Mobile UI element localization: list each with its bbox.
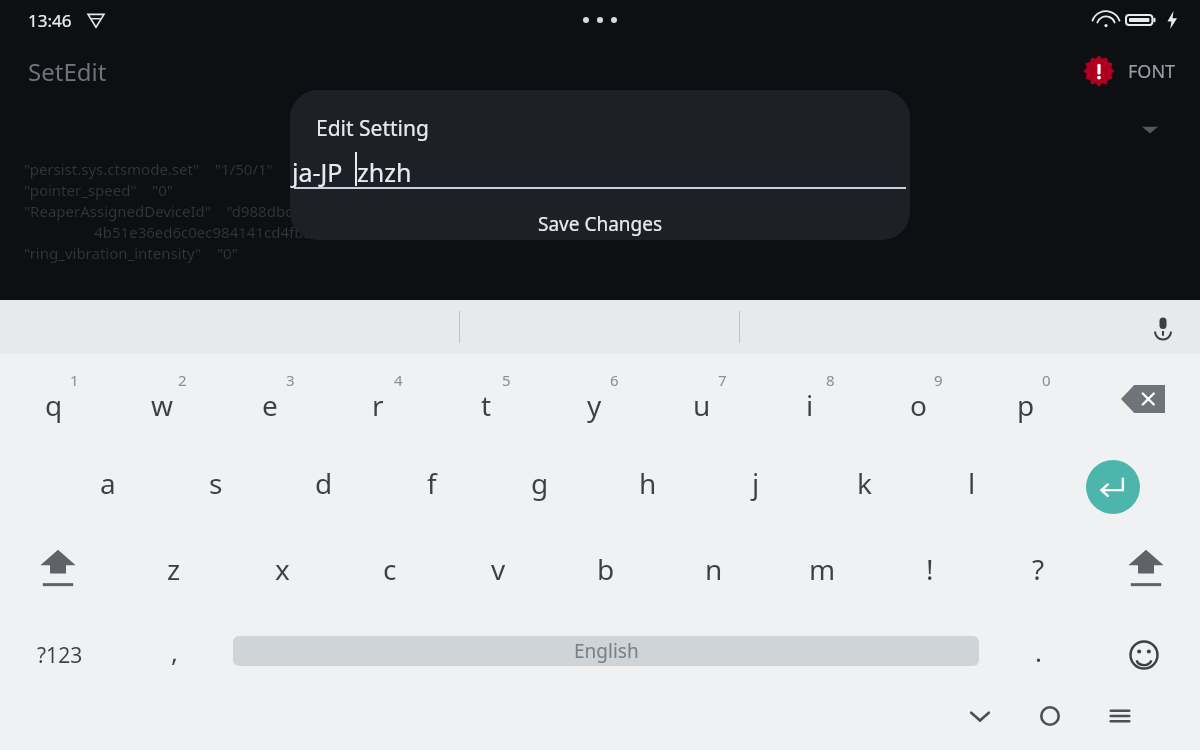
button[interactable]: 5 <box>432 354 540 440</box>
button[interactable]: Shift <box>1094 526 1198 612</box>
button[interactable]: k <box>810 440 918 526</box>
button[interactable]: 8 <box>756 354 864 440</box>
button[interactable]: "ReaperAssignedDeviceId" "d988dbd04b464d… <box>0 200 1200 221</box>
staticText: 13:46 <box>28 9 72 32</box>
staticText: k <box>857 464 872 502</box>
staticText: Save Changes <box>538 211 663 237</box>
staticText: g <box>531 464 549 502</box>
button[interactable]: d <box>270 440 378 526</box>
staticText: o <box>910 386 927 424</box>
button[interactable]: , <box>120 612 228 698</box>
staticText: e <box>262 386 278 424</box>
button[interactable]: ! <box>876 526 984 612</box>
staticText: 1 <box>70 370 79 390</box>
staticText: a <box>100 464 116 502</box>
button[interactable]: f <box>378 440 486 526</box>
staticText: , <box>171 634 178 669</box>
button[interactable]: . <box>984 612 1092 698</box>
staticText: . <box>1035 634 1042 669</box>
staticText: ! <box>926 550 934 588</box>
staticText: m <box>809 550 836 588</box>
staticText: u <box>693 386 711 424</box>
button[interactable]: 6 <box>540 354 648 440</box>
staticText: s <box>209 464 223 502</box>
button[interactable]: Back <box>958 694 1002 738</box>
staticText: l <box>968 464 976 502</box>
button[interactable]: Enter <box>1086 460 1140 514</box>
button[interactable]: l <box>918 440 1026 526</box>
button[interactable]: 3 <box>216 354 324 440</box>
button[interactable]: h <box>594 440 702 526</box>
button[interactable]: v <box>444 526 552 612</box>
staticText: d <box>315 464 333 502</box>
staticText: "persist.sys.ctsmode.set" "1/50/1" <box>24 159 273 179</box>
staticText: t <box>481 386 492 424</box>
other: Expand <box>1142 122 1158 138</box>
button[interactable]: ? <box>984 526 1092 612</box>
button[interactable]: 2 <box>108 354 216 440</box>
staticText: b <box>597 550 615 588</box>
button[interactable]: s <box>162 440 270 526</box>
staticText: SetEdit <box>28 55 107 88</box>
staticText: r <box>372 386 384 424</box>
staticText: x <box>275 550 290 588</box>
button[interactable]: 4b51e36ed6c0ec984141cd4fb9db35e31" <box>0 221 1200 242</box>
button[interactable]: Recent apps <box>1098 694 1142 738</box>
staticText: "ReaperAssignedDeviceId" "d988dbd04b464d… <box>24 201 501 221</box>
staticText: f <box>427 464 437 502</box>
button[interactable]: "pointer_speed" "0" <box>0 179 1200 200</box>
staticText: "ring_vibration_intensity" "0" <box>24 243 238 263</box>
staticText: w <box>151 386 174 424</box>
staticText: v <box>491 550 506 588</box>
button[interactable]: c <box>336 526 444 612</box>
button[interactable]: a <box>54 440 162 526</box>
button[interactable]: Alert <box>1082 54 1182 88</box>
button[interactable]: m <box>768 526 876 612</box>
staticText: h <box>639 464 657 502</box>
staticText: n <box>705 550 723 588</box>
staticText: y <box>587 386 602 424</box>
button[interactable]: "ring_vibration_intensity" "0" <box>0 242 1200 263</box>
staticText: 3 <box>286 370 295 390</box>
other: Alert <box>1082 54 1116 88</box>
staticText: 2 <box>178 370 187 390</box>
staticText: 8 <box>826 370 835 390</box>
button[interactable]: Voice input <box>1146 310 1180 344</box>
staticText: "pointer_speed" "0" <box>24 180 173 200</box>
button[interactable]: z <box>120 526 228 612</box>
staticText: i <box>806 386 814 424</box>
button[interactable]: 1 <box>0 354 108 440</box>
button[interactable]: g <box>486 440 594 526</box>
button[interactable]: j <box>702 440 810 526</box>
staticText: q <box>45 386 63 424</box>
button[interactable]: 0 <box>972 354 1080 440</box>
staticText: j <box>752 464 760 502</box>
staticText: 6 <box>610 370 619 390</box>
staticText: z <box>167 550 181 588</box>
button[interactable]: Save Changes <box>290 205 910 243</box>
staticText: 5 <box>502 370 511 390</box>
button[interactable]: x <box>228 526 336 612</box>
button[interactable]: Home <box>1028 694 1072 738</box>
button[interactable]: Shift <box>6 526 110 612</box>
button[interactable]: ?123 <box>6 612 114 698</box>
staticText: 0 <box>1042 370 1051 390</box>
staticText: c <box>383 550 397 588</box>
button[interactable]: 7 <box>648 354 756 440</box>
button[interactable]: English <box>233 636 979 666</box>
staticText: 9 <box>934 370 943 390</box>
button[interactable]: b <box>552 526 660 612</box>
staticText: ?123 <box>37 641 83 670</box>
button[interactable]: Emoji <box>1094 612 1194 698</box>
button[interactable]: 9 <box>864 354 972 440</box>
button[interactable]: "persist.sys.ctsmode.set" "1/50/1" <box>0 158 1200 179</box>
button[interactable]: 4 <box>324 354 432 440</box>
staticText: 4b51e36ed6c0ec984141cd4fb9db35e31" <box>24 222 380 242</box>
staticText: zhzh <box>357 155 412 189</box>
staticText: English <box>574 638 639 664</box>
button[interactable]: n <box>660 526 768 612</box>
staticText: 7 <box>718 370 727 390</box>
staticText: Edit Setting <box>316 114 429 143</box>
button[interactable]: Backspace <box>1108 374 1178 424</box>
